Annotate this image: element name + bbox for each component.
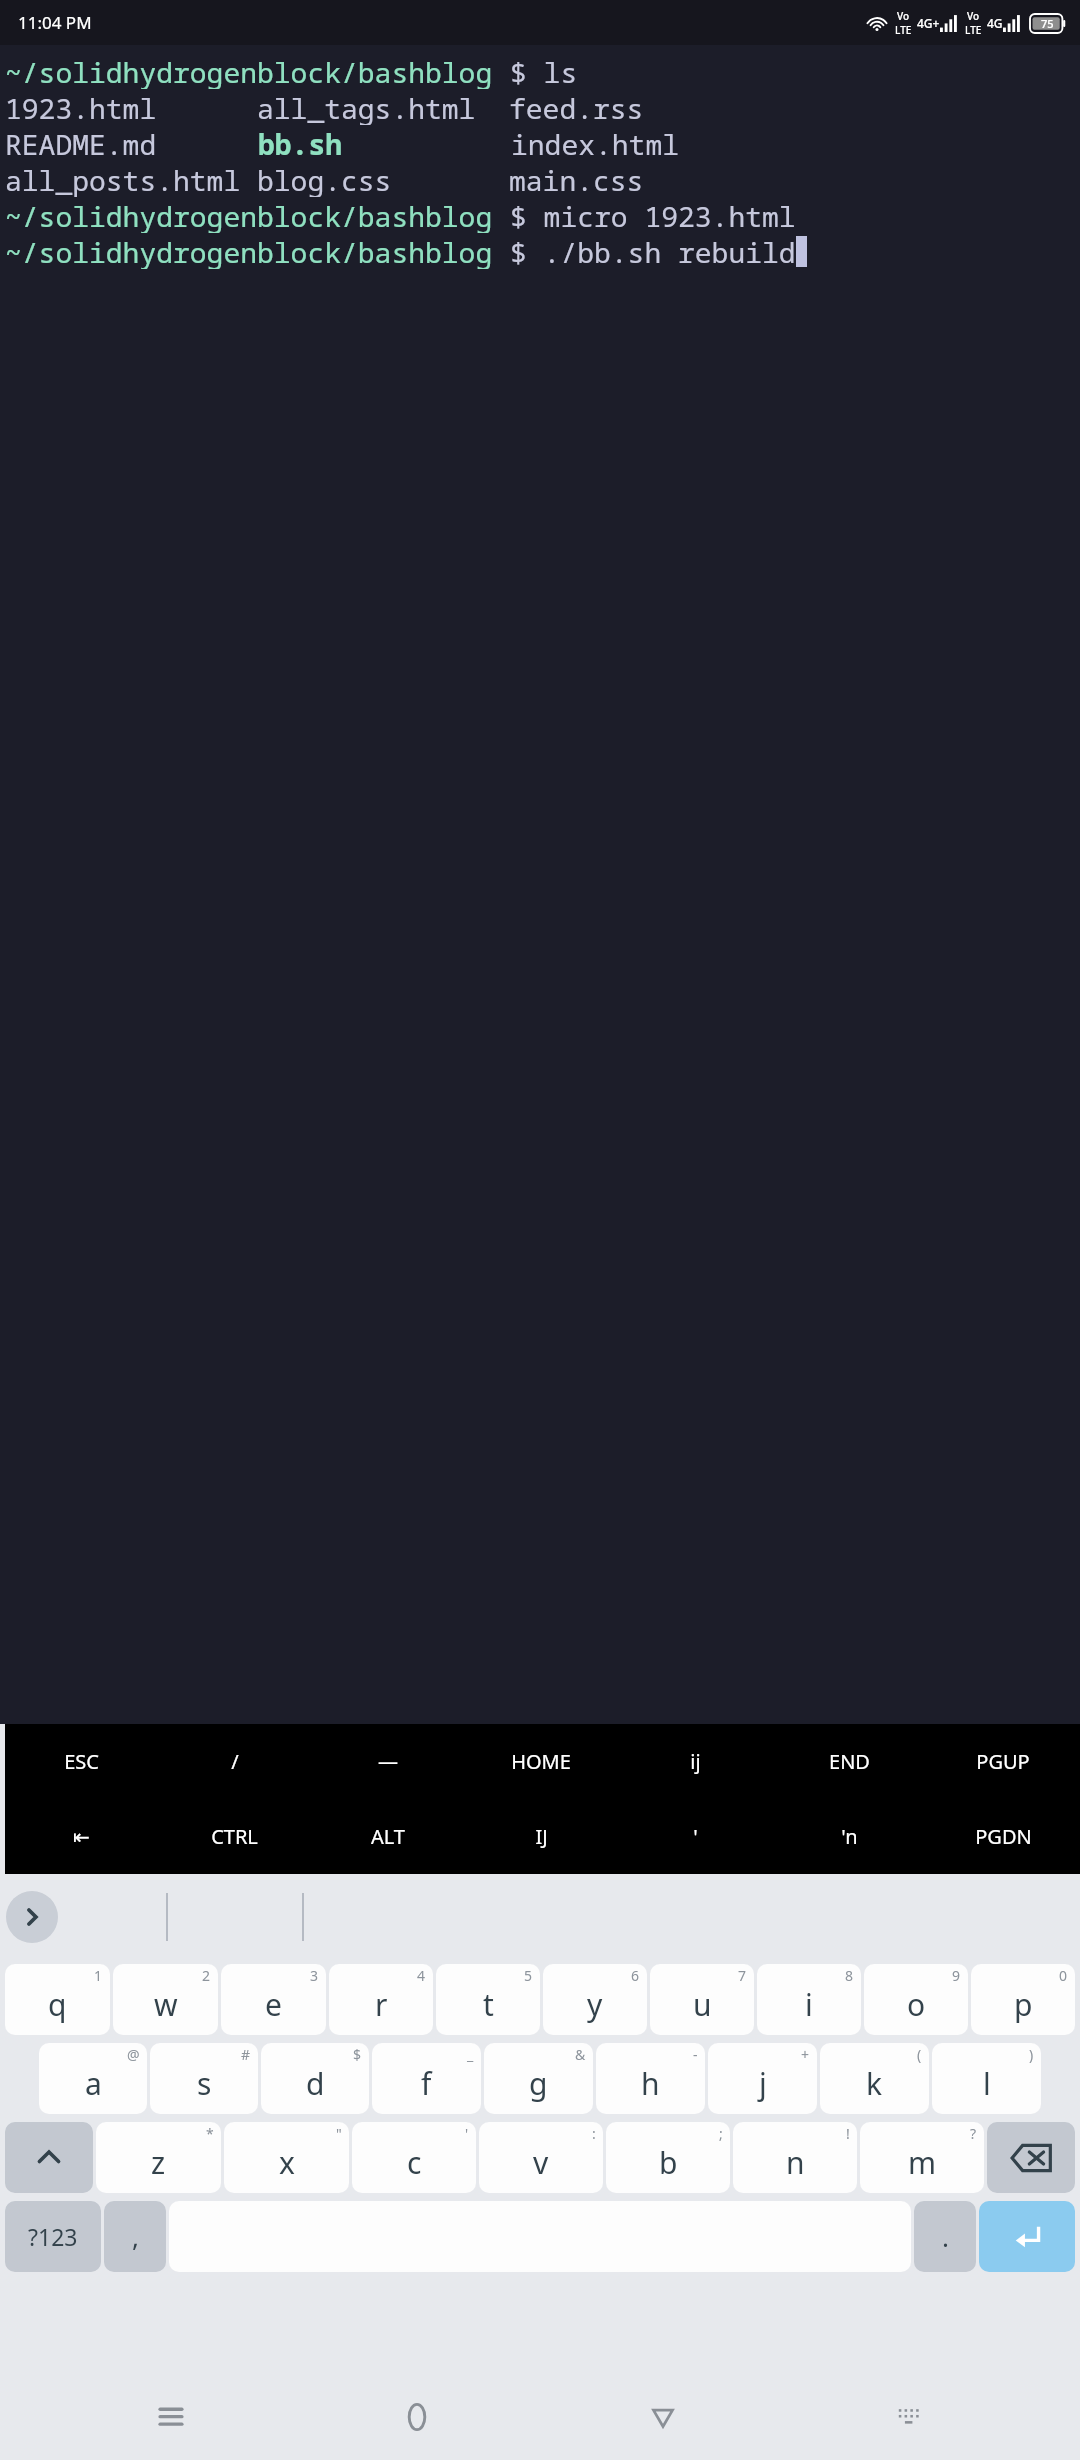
- button[interactable]: 9: [864, 1964, 968, 2035]
- staticText: *: [206, 2124, 214, 2143]
- button[interactable]: .: [914, 2201, 976, 2272]
- button[interactable]: CTRL: [158, 1799, 311, 1874]
- button[interactable]: 3: [221, 1964, 326, 2035]
- button[interactable]: ALT: [311, 1799, 464, 1874]
- button[interactable]: PGUP: [926, 1724, 1080, 1799]
- staticText: ,: [132, 2219, 139, 2254]
- staticText: ;: [719, 2124, 723, 2143]
- button[interactable]: Enter: [979, 2201, 1075, 2272]
- staticText: ': [465, 2124, 469, 2143]
- button[interactable]: 7: [650, 1964, 754, 2035]
- staticText: all_posts.html blog.css main.css: [5, 161, 644, 197]
- staticText: 0: [1059, 1966, 1068, 1985]
- button[interactable]: Backspace: [987, 2122, 1075, 2193]
- button[interactable]: 4: [329, 1964, 433, 2035]
- button[interactable]: !: [733, 2122, 857, 2193]
- staticText: o: [907, 1984, 926, 2025]
- button[interactable]: ": [224, 2122, 349, 2193]
- staticText: t: [483, 1984, 494, 2025]
- button[interactable]: ESC: [5, 1724, 158, 1799]
- button[interactable]: /: [158, 1724, 311, 1799]
- button[interactable]: ,: [104, 2201, 166, 2272]
- staticText: ij: [690, 1748, 701, 1775]
- staticText: &: [575, 2045, 586, 2064]
- button[interactable]: ': [352, 2122, 476, 2193]
- staticText: CTRL: [211, 1823, 258, 1850]
- staticText: q: [48, 1984, 67, 2025]
- staticText: 4G+: [917, 15, 940, 31]
- button[interactable]: ): [932, 2043, 1041, 2114]
- button[interactable]: Expand toolbar: [6, 1891, 58, 1943]
- button[interactable]: ?: [860, 2122, 984, 2193]
- staticText: !: [846, 2124, 850, 2143]
- staticText: HOME: [511, 1748, 571, 1775]
- staticText: w: [154, 1984, 178, 2025]
- button[interactable]: Hide keyboard: [866, 2374, 952, 2460]
- button[interactable]: &: [484, 2043, 593, 2114]
- button[interactable]: 8: [757, 1964, 861, 2035]
- staticText: 2: [202, 1966, 211, 1985]
- staticText: e: [265, 1984, 282, 2025]
- button[interactable]: 'n: [772, 1799, 926, 1874]
- button[interactable]: IJ: [464, 1799, 618, 1874]
- staticText: /: [231, 1748, 239, 1775]
- button[interactable]: ': [618, 1799, 772, 1874]
- staticText: Vo: [967, 9, 980, 23]
- staticText: _: [467, 2045, 474, 2064]
- button[interactable]: 6: [543, 1964, 647, 2035]
- staticText: j: [759, 2063, 767, 2104]
- staticText: #: [241, 2045, 251, 2064]
- button[interactable]: :: [479, 2122, 603, 2193]
- staticText: ?: [970, 2124, 977, 2143]
- button[interactable]: ?123: [5, 2201, 101, 2272]
- button[interactable]: $: [261, 2043, 369, 2114]
- button[interactable]: Back: [620, 2374, 706, 2460]
- button[interactable]: Shift: [5, 2122, 93, 2193]
- staticText: ⇤: [73, 1825, 90, 1848]
- button[interactable]: _: [372, 2043, 481, 2114]
- staticText: ": [336, 2124, 342, 2143]
- staticText: 1: [94, 1966, 103, 1985]
- staticText: z: [151, 2142, 166, 2183]
- staticText: ': [693, 1823, 698, 1850]
- staticText: —: [378, 1748, 398, 1775]
- staticText: $ ls: [510, 53, 578, 89]
- button[interactable]: @: [39, 2043, 147, 2114]
- button[interactable]: 0: [971, 1964, 1075, 2035]
- staticText: $ ./bb.sh rebuild: [510, 233, 796, 269]
- staticText: ?123: [28, 2221, 78, 2252]
- staticText: 3: [310, 1966, 319, 1985]
- staticText: b: [659, 2142, 678, 2183]
- button[interactable]: Home: [374, 2374, 460, 2460]
- button[interactable]: ij: [618, 1724, 772, 1799]
- button[interactable]: (: [820, 2043, 929, 2114]
- button[interactable]: *: [96, 2122, 221, 2193]
- button[interactable]: #: [150, 2043, 258, 2114]
- button[interactable]: 1: [5, 1964, 110, 2035]
- staticText: $: [353, 2045, 362, 2064]
- staticText: .: [942, 2219, 949, 2254]
- staticText: g: [529, 2063, 548, 2104]
- staticText: h: [641, 2063, 660, 2104]
- button[interactable]: ;: [606, 2122, 730, 2193]
- button[interactable]: END: [772, 1724, 926, 1799]
- staticText: ~/solidhydrogenblock/bashblog: [5, 197, 510, 233]
- staticText: c: [407, 2142, 422, 2183]
- staticText: bb.sh: [258, 125, 343, 161]
- button[interactable]: —: [311, 1724, 464, 1799]
- button[interactable]: -: [596, 2043, 705, 2114]
- staticText: :: [592, 2124, 596, 2143]
- button[interactable]: Recent apps: [128, 2374, 214, 2460]
- staticText: ~/solidhydrogenblock/bashblog: [5, 233, 510, 269]
- staticText: u: [693, 1984, 712, 2025]
- staticText: PGDN: [975, 1823, 1032, 1850]
- button[interactable]: PGDN: [926, 1799, 1080, 1874]
- button[interactable]: ⇤: [5, 1799, 158, 1874]
- button[interactable]: HOME: [464, 1724, 618, 1799]
- staticText: i: [805, 1984, 813, 2025]
- button[interactable]: 2: [113, 1964, 218, 2035]
- button[interactable]: 5: [436, 1964, 540, 2035]
- button[interactable]: +: [708, 2043, 817, 2114]
- staticText: p: [1014, 1984, 1033, 2025]
